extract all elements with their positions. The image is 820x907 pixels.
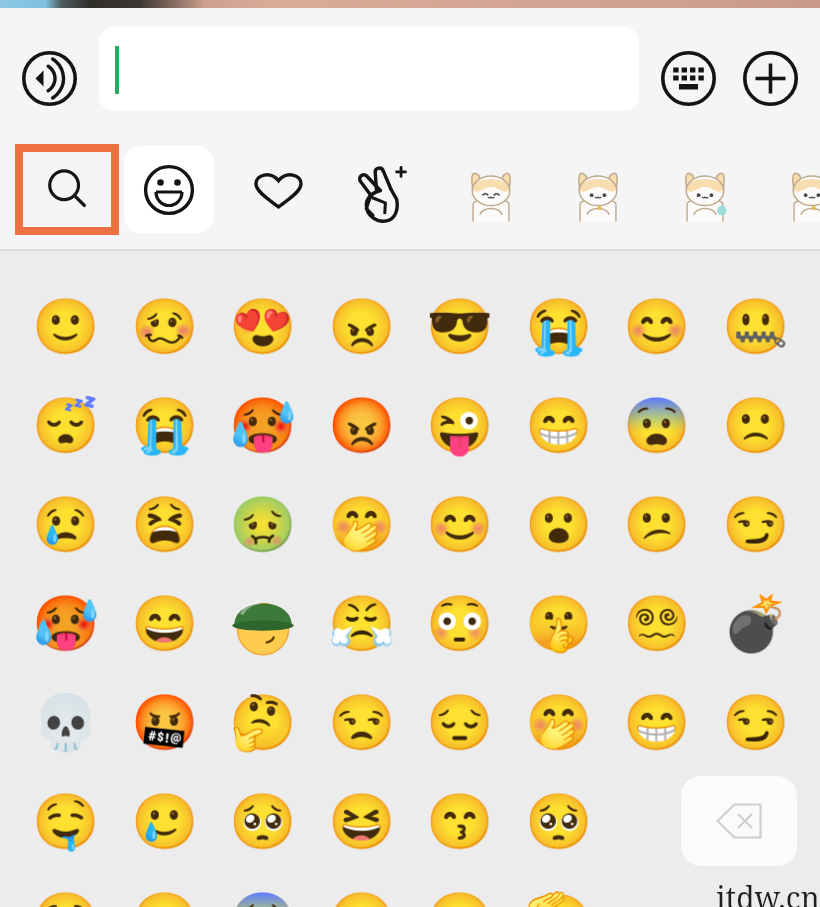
button[interactable] <box>99 27 639 111</box>
staticText: 😵‍💫 <box>623 592 691 655</box>
button[interactable]: 😭 <box>115 376 214 475</box>
button[interactable]: 🙂 <box>16 277 115 376</box>
button[interactable]: 🤭 <box>312 475 411 574</box>
staticText: 😊 <box>426 493 494 556</box>
button[interactable]: 🫡 <box>509 871 608 907</box>
staticText: 🙁 <box>722 394 790 457</box>
button[interactable]: 😁 <box>607 673 706 772</box>
button[interactable]: Voice input <box>22 51 77 106</box>
button[interactable]: 😌 <box>16 871 115 907</box>
button[interactable]: 🤭 <box>509 673 608 772</box>
button[interactable]: 🙂 <box>312 871 411 907</box>
staticText: 🥺 <box>229 790 297 853</box>
staticText: 🙂 <box>131 889 199 907</box>
button[interactable]: 🤤 <box>16 772 115 871</box>
button[interactable]: 🥲 <box>115 772 214 871</box>
staticText: 😮 <box>525 493 593 556</box>
button[interactable]: 🥺 <box>213 772 312 871</box>
staticText: 🙂 <box>426 889 494 907</box>
button[interactable]: 😫 <box>115 475 214 574</box>
button[interactable]: 😕 <box>607 475 706 574</box>
button[interactable] <box>213 574 312 673</box>
button[interactable]: Sticker pack <box>773 158 820 234</box>
button[interactable]: 😡 <box>312 376 411 475</box>
staticText: 🥺 <box>525 790 593 853</box>
button[interactable]: Sticker pack <box>559 158 637 234</box>
button[interactable]: Favorites <box>246 165 310 215</box>
staticText: 🤢 <box>229 493 297 556</box>
staticText: 😊 <box>623 295 691 358</box>
staticText: 😳 <box>426 592 494 655</box>
button[interactable]: 💣 <box>706 574 805 673</box>
button[interactable]: 😊 <box>410 475 509 574</box>
button[interactable]: 😭 <box>509 277 608 376</box>
button[interactable]: 😨 <box>607 376 706 475</box>
button[interactable]: Delete <box>681 776 797 866</box>
staticText: 🤐 <box>722 295 790 358</box>
button[interactable]: 😵‍💫 <box>607 574 706 673</box>
button[interactable]: 🤢 <box>213 475 312 574</box>
staticText: 😍 <box>229 295 297 358</box>
button[interactable]: Search <box>23 152 111 227</box>
staticText: 😒 <box>328 691 396 754</box>
button[interactable]: 😮 <box>509 475 608 574</box>
button[interactable]: 😁 <box>509 376 608 475</box>
button[interactable]: 🤫 <box>509 574 608 673</box>
button[interactable]: Sticker pack <box>666 158 744 234</box>
button[interactable]: 😒 <box>312 673 411 772</box>
staticText: 🫡 <box>525 889 593 907</box>
button[interactable]: Sticker pack <box>452 158 530 234</box>
button[interactable]: 🤐 <box>706 277 805 376</box>
button[interactable]: 🤔 <box>213 673 312 772</box>
staticText: 🤭 <box>525 691 593 754</box>
staticText: 🥴 <box>131 295 199 358</box>
staticText: 😎 <box>426 295 494 358</box>
staticText: 😌 <box>32 889 100 907</box>
staticText: 🤬 <box>131 691 199 754</box>
button[interactable]: 😳 <box>410 574 509 673</box>
staticText: 🙂 <box>32 295 100 358</box>
staticText: 🤫 <box>525 592 593 655</box>
button[interactable]: 😄 <box>115 574 214 673</box>
staticText: 😴 <box>32 394 100 457</box>
button[interactable]: 😍 <box>213 277 312 376</box>
staticText: 🤔 <box>229 691 297 754</box>
staticText: 😨 <box>623 394 691 457</box>
button[interactable]: 😰 <box>213 871 312 907</box>
button[interactable]: 🙂 <box>115 871 214 907</box>
staticText: 😄 <box>131 592 199 655</box>
button[interactable]: 😏 <box>706 673 805 772</box>
button[interactable]: Keyboard <box>661 51 716 106</box>
button[interactable]: 🤬 <box>115 673 214 772</box>
button[interactable]: 😔 <box>410 673 509 772</box>
button[interactable] <box>124 146 214 233</box>
staticText: 😤 <box>328 592 396 655</box>
staticText: 🙂 <box>328 889 396 907</box>
button[interactable]: 😙 <box>410 772 509 871</box>
button[interactable]: 🙂 <box>410 871 509 907</box>
staticText: 🥲 <box>131 790 199 853</box>
button[interactable]: 💀 <box>16 673 115 772</box>
button[interactable]: 😢 <box>16 475 115 574</box>
staticText: 💣 <box>722 592 790 655</box>
button[interactable]: 😊 <box>607 277 706 376</box>
button[interactable]: 🥴 <box>115 277 214 376</box>
button[interactable]: Add <box>743 51 798 106</box>
button[interactable]: 😆 <box>312 772 411 871</box>
staticText: 😠 <box>328 295 396 358</box>
staticText: 😰 <box>229 889 297 907</box>
button[interactable]: 😜 <box>410 376 509 475</box>
button[interactable]: 🥺 <box>509 772 608 871</box>
button[interactable]: 😤 <box>312 574 411 673</box>
button[interactable]: 😴 <box>16 376 115 475</box>
button[interactable]: 😎 <box>410 277 509 376</box>
staticText: 💀 <box>32 691 100 754</box>
button[interactable]: 🥵 <box>16 574 115 673</box>
button[interactable]: Gestures <box>352 160 412 226</box>
button[interactable]: 😠 <box>312 277 411 376</box>
staticText: 😏 <box>722 691 790 754</box>
staticText: 😙 <box>426 790 494 853</box>
button[interactable]: 😏 <box>706 475 805 574</box>
button[interactable]: 🙁 <box>706 376 805 475</box>
button[interactable]: 🥵 <box>213 376 312 475</box>
